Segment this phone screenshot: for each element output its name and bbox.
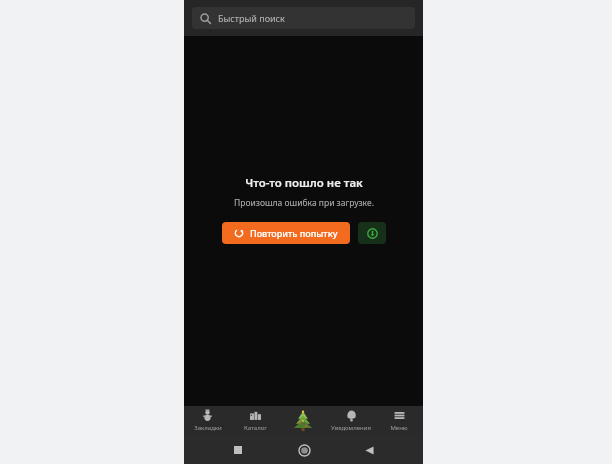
staticText: Быстрый поиск (218, 12, 285, 24)
button[interactable]: Скачать (358, 222, 386, 244)
staticText: Меню (390, 424, 408, 432)
button[interactable]: Recents (226, 438, 250, 462)
button[interactable]: Повторить попытку (222, 222, 350, 244)
button[interactable]: Уведомления (327, 406, 375, 435)
staticText: Каталог (244, 424, 267, 432)
staticText: Произошла ошибка при загрузке. (234, 197, 374, 209)
staticText: Уведомления (331, 424, 371, 432)
button[interactable]: Меню (375, 406, 423, 435)
button[interactable]: Главная (279, 406, 327, 435)
button[interactable]: Back (357, 438, 381, 462)
button[interactable]: Home (292, 438, 316, 462)
button[interactable]: Каталог (231, 406, 279, 435)
staticText: Что-то пошло не так (245, 175, 363, 191)
button[interactable]: Закладки (184, 406, 231, 435)
staticText: Закладки (194, 424, 222, 432)
staticText: Повторить попытку (250, 227, 338, 239)
button[interactable]: Быстрый поиск (192, 7, 415, 29)
